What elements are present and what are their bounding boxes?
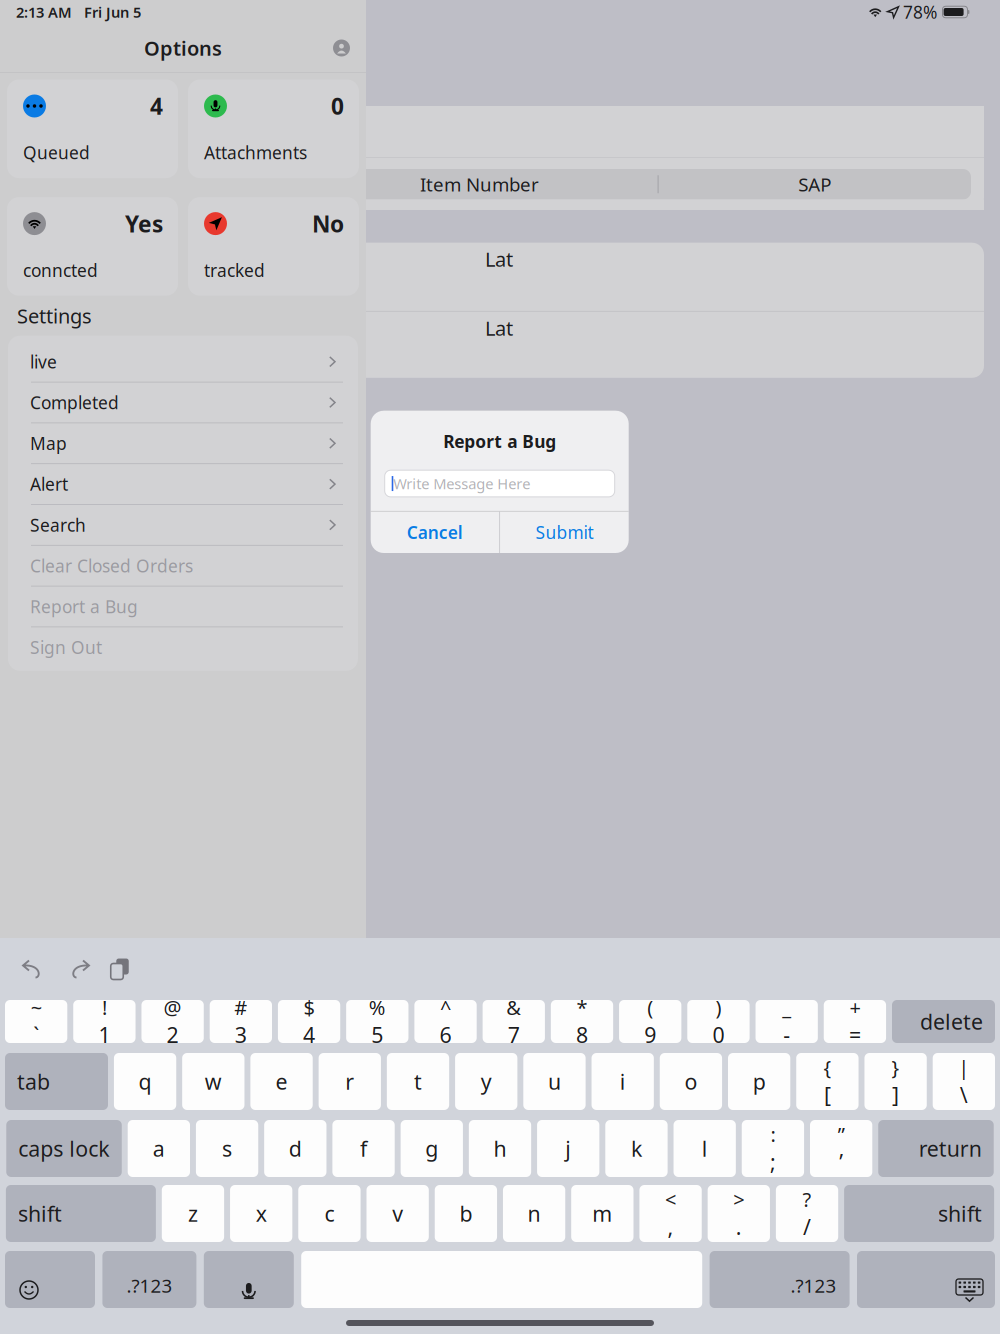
button[interactable]: Account [325,31,358,64]
button[interactable]: > [708,1185,770,1242]
button[interactable]: u [523,1053,586,1110]
staticText: 2:13 AM [16,2,72,22]
button[interactable]: w [182,1053,244,1110]
staticText: 8 [576,1021,588,1049]
button[interactable]: d [264,1120,326,1177]
button[interactable]: ! [73,1000,135,1043]
button[interactable]: Hide Keyboard [857,1251,995,1308]
staticText: Map [30,432,67,455]
button[interactable]: .?123 [710,1251,850,1308]
button[interactable]: 4 [7,79,178,178]
button[interactable]: t [387,1053,449,1110]
staticText: n [528,1199,541,1228]
button[interactable]: Map [8,423,358,463]
button[interactable]: Emoji [5,1251,95,1308]
button[interactable]: o [660,1053,722,1110]
staticText: 1 [98,1021,110,1049]
staticText: # [234,994,247,1021]
button[interactable]: Sign Out [8,627,358,667]
button[interactable]: q [114,1053,176,1110]
button[interactable]: v [366,1185,429,1242]
button[interactable]: k [605,1120,668,1177]
button[interactable]: @ [141,1000,204,1043]
button[interactable]: h [469,1120,531,1177]
button[interactable]: # [210,1000,272,1043]
button[interactable]: 0 [188,79,359,178]
button[interactable]: j [537,1120,599,1177]
button[interactable]: Completed [8,382,358,422]
button[interactable]: shift [844,1185,994,1242]
staticText: d [289,1134,302,1163]
button[interactable]: i [591,1053,654,1110]
button[interactable]: % [346,1000,408,1043]
staticText: Report a Bug [30,595,138,618]
staticText: Settings [17,302,92,329]
button[interactable]: } [864,1053,927,1110]
staticText: t [414,1067,422,1096]
button[interactable]: | [933,1053,995,1110]
button[interactable]: c [298,1185,361,1242]
button[interactable]: y [455,1053,517,1110]
button[interactable]: < [639,1185,702,1242]
button[interactable]: e [250,1053,313,1110]
button[interactable]: l [673,1120,736,1177]
staticText: / [803,1213,811,1241]
button[interactable]: + [824,1000,886,1043]
button[interactable]: No [188,197,359,296]
button[interactable]: Dictation [204,1251,294,1308]
button[interactable]: s [196,1120,258,1177]
staticText: caps lock [18,1134,109,1163]
button[interactable]: g [401,1120,463,1177]
button[interactable]: ) [687,1000,750,1043]
button[interactable]: ^ [414,1000,477,1043]
staticText: 2 [167,1021,179,1049]
button[interactable]: caps lock [6,1120,122,1177]
button[interactable]: Clear Closed Orders [8,546,358,586]
button[interactable]: $ [278,1000,340,1043]
button[interactable]: : [742,1120,804,1177]
staticText: ! [102,994,107,1021]
button[interactable]: & [483,1000,545,1043]
staticText: Clear Closed Orders [30,554,193,577]
button[interactable]: _ [755,1000,818,1043]
button[interactable]: ~ [5,1000,67,1043]
button[interactable]: live [8,342,358,382]
button[interactable]: ? [776,1185,838,1242]
button[interactable]: f [332,1120,395,1177]
button[interactable]: m [571,1185,633,1242]
button[interactable]: z [162,1185,224,1242]
staticText: tracked [204,259,265,282]
button[interactable]: Report a Bug [8,586,358,626]
button[interactable]: Redo [56,949,100,988]
button[interactable]: b [435,1185,497,1242]
staticText: g [425,1134,438,1163]
button[interactable]: ” [810,1120,872,1177]
button[interactable]: r [319,1053,381,1110]
button[interactable]: Paste [100,948,139,989]
button[interactable]: ( [619,1000,681,1043]
button[interactable]: x [230,1185,292,1242]
button[interactable]: shift [6,1185,156,1242]
staticText: ^ [440,994,451,1021]
button[interactable]: * [551,1000,613,1043]
button[interactable]: .?123 [102,1251,196,1308]
button[interactable]: Cancel [370,512,499,553]
button[interactable]: Alert [8,464,358,504]
button[interactable]: Submit [500,512,629,553]
staticText: ` [33,1021,39,1049]
staticText: 6 [439,1021,451,1049]
button[interactable]: Undo [12,949,56,988]
button[interactable]: p [728,1053,790,1110]
button[interactable]: Yes [7,197,178,296]
button[interactable]: { [796,1053,858,1110]
staticText: * [576,994,587,1021]
button[interactable]: n [503,1185,565,1242]
button[interactable]: Search [8,505,358,545]
button[interactable]: a [128,1120,190,1177]
button[interactable]: return [878,1120,994,1177]
staticText: f [360,1134,367,1163]
button[interactable]: tab [5,1053,108,1110]
staticText: 3 [235,1021,247,1049]
button[interactable]: delete [892,1000,995,1043]
